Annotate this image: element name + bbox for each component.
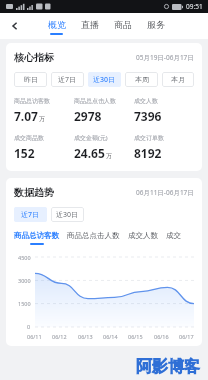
staticText: 06/11 <box>27 333 42 340</box>
staticText: 7396 <box>134 108 162 124</box>
button[interactable]: 直播 <box>73 13 106 39</box>
staticText: 4500 <box>18 254 31 261</box>
staticText: 24.65 <box>74 145 105 161</box>
staticText: 商品总点击人数 <box>67 231 120 240</box>
staticText: 商品总点击人数 <box>74 97 116 105</box>
staticText: 成交订单数 <box>134 134 164 142</box>
staticText: 阿影博客 <box>136 357 200 377</box>
staticText: 近30日 <box>56 210 79 220</box>
staticText: 本周 <box>135 75 149 84</box>
staticText: 09:51 <box>186 2 203 11</box>
button[interactable]: 成交 <box>166 231 181 245</box>
staticText: 06/17 <box>179 333 194 340</box>
staticText: 商品总访客数 <box>14 97 50 105</box>
staticText: 成交金额(元) <box>74 134 108 142</box>
staticText: 06/13 <box>78 333 93 340</box>
button[interactable]: 近30日 <box>88 72 121 87</box>
staticText: 06/12 <box>52 333 67 340</box>
staticText: 3000 <box>18 277 31 284</box>
button[interactable]: 近7日 <box>14 207 47 222</box>
staticText: 数据趋势 <box>14 186 54 199</box>
staticText: 近7日 <box>58 75 77 85</box>
staticText: 06月11日-06月17日 <box>136 188 194 197</box>
staticText: 服务 <box>147 19 165 30</box>
staticText: 昨日 <box>24 75 38 84</box>
staticText: 06/16 <box>154 333 169 340</box>
staticText: 概览 <box>48 19 66 30</box>
staticText: 1500 <box>18 300 31 307</box>
staticText: 成交 <box>166 231 181 240</box>
staticText: 万 <box>39 115 45 123</box>
button[interactable]: 近30日 <box>51 207 84 222</box>
staticText: 商品 <box>114 19 132 30</box>
button[interactable]: 商品 <box>106 13 139 39</box>
button[interactable]: 本月 <box>162 72 194 87</box>
staticText: 成交人数 <box>134 97 158 105</box>
staticText: 7.07 <box>14 108 38 124</box>
staticText: 06/15 <box>128 333 143 340</box>
staticText: 万 <box>106 152 112 160</box>
staticText: 核心指标 <box>14 51 54 64</box>
button[interactable]: Back <box>0 13 30 39</box>
button[interactable]: 商品总访客数 <box>14 231 59 245</box>
staticText: 成交人数 <box>128 231 158 240</box>
staticText: 0 <box>27 323 31 330</box>
staticText: 05月19日-06月17日 <box>136 53 194 62</box>
button[interactable]: 概览 <box>40 13 73 39</box>
button[interactable]: 昨日 <box>14 72 47 87</box>
staticText: 近30日 <box>93 75 116 85</box>
button[interactable]: 本周 <box>125 72 158 87</box>
staticText: 8192 <box>134 145 162 161</box>
staticText: 本月 <box>171 75 185 84</box>
button[interactable]: 商品总点击人数 <box>67 231 120 245</box>
button[interactable]: 近7日 <box>51 72 84 87</box>
staticText: 商品总访客数 <box>14 231 59 240</box>
staticText: 06/14 <box>103 333 118 340</box>
staticText: 直播 <box>81 19 99 30</box>
staticText: 近7日 <box>21 210 40 220</box>
staticText: 2978 <box>74 108 102 124</box>
staticText: 成交商品数 <box>14 134 44 142</box>
button[interactable]: 服务 <box>139 13 172 39</box>
button[interactable]: 成交人数 <box>128 231 158 245</box>
staticText: 152 <box>14 145 35 161</box>
